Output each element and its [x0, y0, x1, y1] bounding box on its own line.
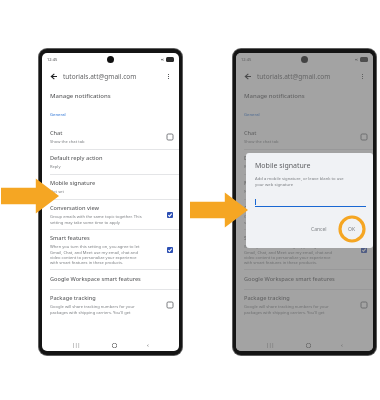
staticText: Group emails with the same topic togethe…: [50, 214, 142, 225]
button[interactable]: Smart features: [236, 230, 373, 269]
button[interactable]: Mobile signature: [42, 175, 179, 199]
button[interactable]: Default reply action: [42, 150, 179, 174]
staticText: Mobile signature: [50, 179, 96, 187]
button[interactable]: Conversation view: [236, 200, 373, 229]
staticText: Package tracking: [50, 294, 96, 302]
staticText: Show the chat tab: [50, 139, 85, 145]
staticText: Add a mobile signature, or leave blank t…: [255, 176, 344, 188]
staticText: Google will share tracking numbers for y…: [244, 304, 329, 315]
staticText: Cancel: [311, 226, 327, 233]
button[interactable]: [255, 197, 366, 207]
staticText: ‹: [341, 341, 343, 349]
staticText: Package tracking: [244, 294, 290, 302]
button[interactable]: Package tracking toggle: [167, 302, 173, 308]
staticText: Default reply action: [244, 154, 297, 162]
button[interactable]: Mobile signature: [236, 175, 373, 199]
staticText: Mobile signature: [244, 179, 290, 187]
staticText: Conversation view: [244, 204, 294, 212]
button[interactable]: Conversation view: [42, 200, 179, 229]
button[interactable]: Smart features toggle: [361, 247, 367, 253]
button[interactable]: Chat toggle: [167, 134, 173, 140]
staticText: Mobile signature: [255, 161, 311, 171]
staticText: OK: [348, 226, 356, 233]
staticText: Google Workspace smart features: [244, 275, 335, 283]
staticText: Show the chat tab: [244, 139, 279, 145]
staticText: Default reply action: [50, 154, 103, 162]
button[interactable]: Chat: [236, 125, 373, 149]
button[interactable]: Smart features: [42, 230, 179, 269]
staticText: Conversation view: [50, 204, 100, 212]
staticText: Group emails with the same topic togethe…: [244, 214, 336, 225]
button[interactable]: OK: [345, 224, 359, 235]
staticText: When you turn this setting on, you agree…: [50, 244, 140, 265]
staticText: Google Workspace smart features: [50, 275, 141, 283]
button[interactable]: Package tracking toggle: [361, 302, 367, 308]
staticText: Smart features: [50, 234, 90, 242]
staticText: tutorials.att@gmail.com: [257, 72, 331, 81]
staticText: General: [244, 112, 260, 118]
button[interactable]: Back: [47, 70, 59, 82]
button[interactable]: Default reply action: [236, 150, 373, 174]
button[interactable]: Package tracking: [42, 290, 179, 319]
button[interactable]: Package tracking: [236, 290, 373, 319]
staticText: Manage notifications: [244, 92, 305, 100]
staticText: |||: [72, 342, 81, 349]
staticText: Not set: [244, 189, 258, 195]
button[interactable]: More options: [356, 70, 368, 82]
button[interactable]: Conversation view toggle: [167, 212, 173, 218]
staticText: 12:45: [47, 57, 58, 62]
staticText: Manage notifications: [50, 92, 111, 100]
button[interactable]: Back: [241, 70, 253, 82]
button[interactable]: Chat: [42, 125, 179, 149]
staticText: Reply: [244, 164, 255, 170]
button[interactable]: More options: [162, 70, 174, 82]
staticText: 12:45: [241, 57, 252, 62]
button[interactable]: Smart features toggle: [167, 247, 173, 253]
staticText: ▾⁞: [355, 57, 359, 62]
staticText: Not set: [50, 189, 64, 195]
staticText: Reply: [50, 164, 61, 170]
staticText: Chat: [50, 129, 63, 137]
staticText: Google will share tracking numbers for y…: [50, 304, 135, 315]
staticText: Smart features: [244, 234, 284, 242]
staticText: Chat: [244, 129, 257, 137]
staticText: ▾⁞: [161, 57, 165, 62]
staticText: General: [50, 112, 66, 118]
staticText: ‹: [147, 341, 149, 349]
button[interactable]: Cancel: [306, 224, 332, 235]
staticText: tutorials.att@gmail.com: [63, 72, 137, 81]
button[interactable]: Chat toggle: [361, 134, 367, 140]
staticText: When you turn this setting on, you agree…: [244, 244, 334, 265]
staticText: |||: [266, 342, 275, 349]
